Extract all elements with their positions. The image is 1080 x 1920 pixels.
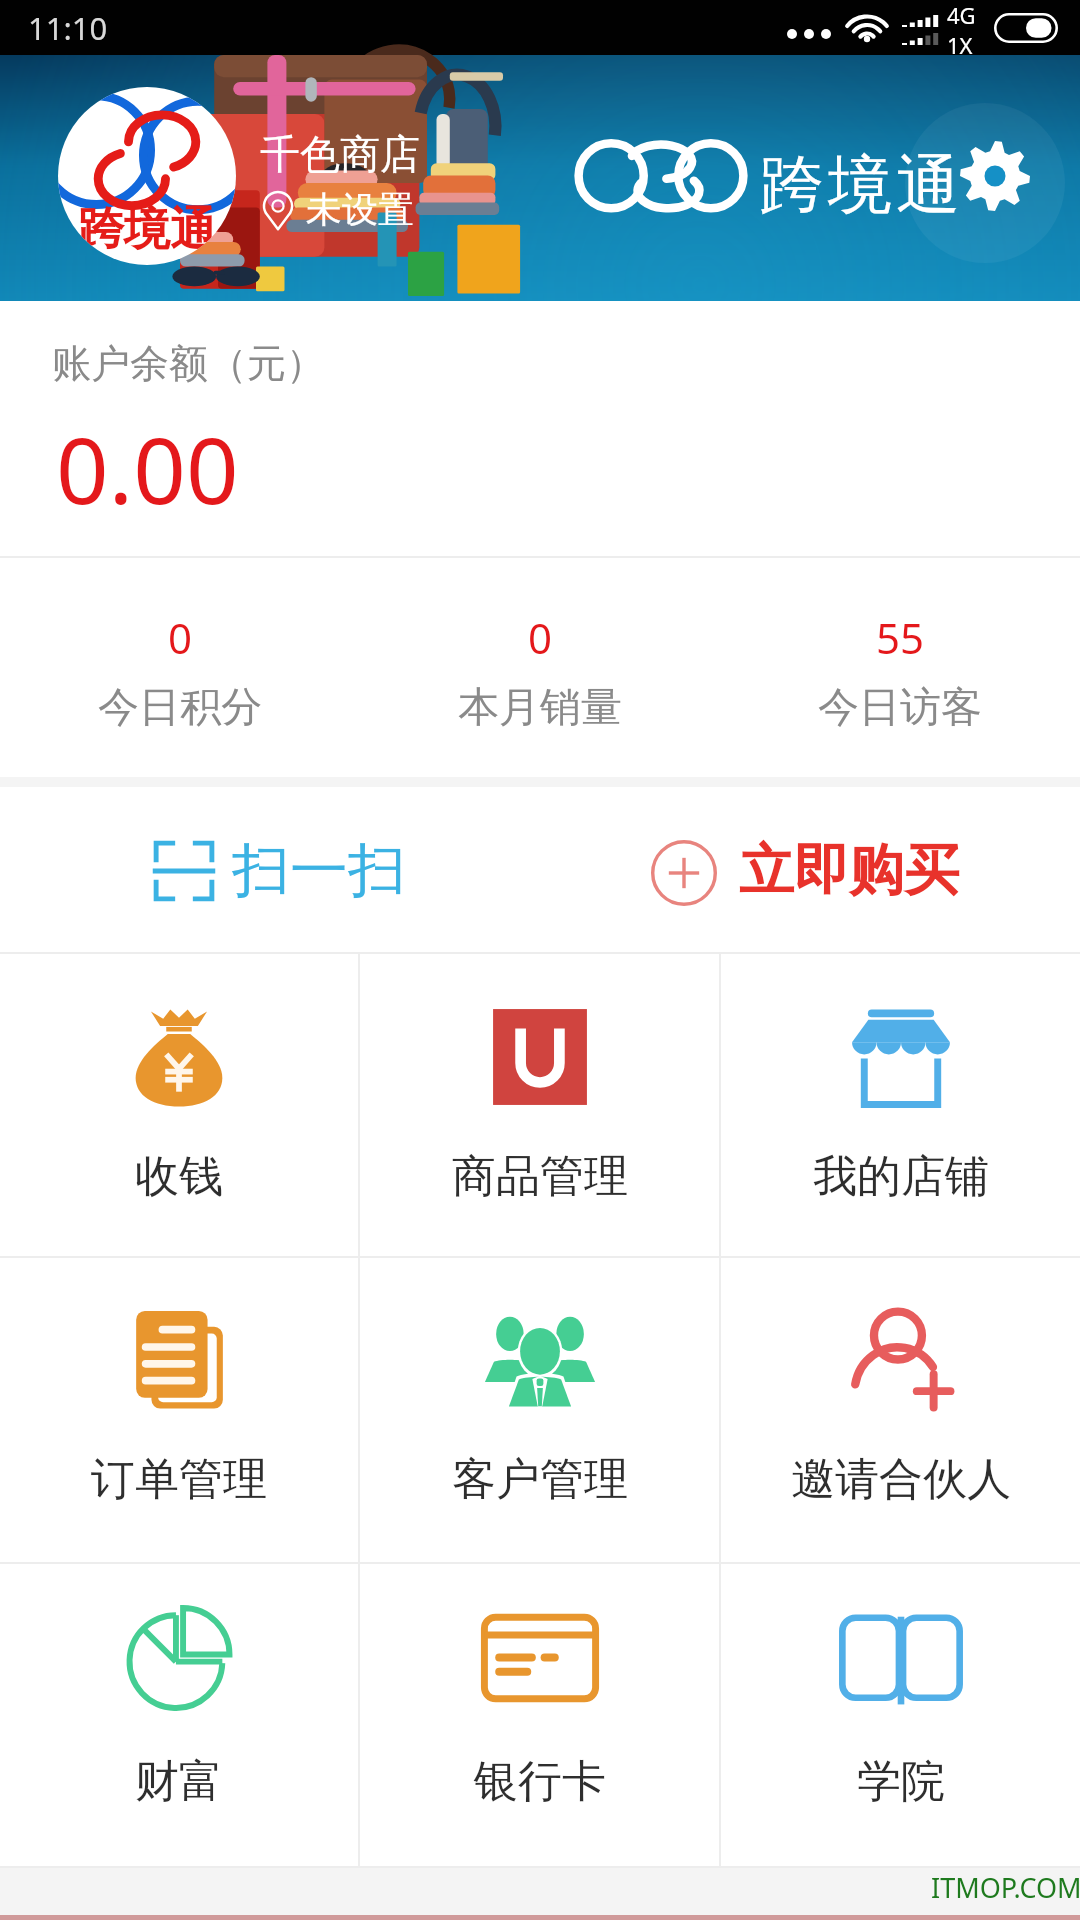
staticText: 商品管理 (452, 1149, 628, 1204)
button[interactable]: 财富 (0, 1564, 358, 1866)
button[interactable]: 千色商店 (254, 121, 484, 241)
button[interactable]: 扫一扫 (0, 787, 540, 954)
staticText: ITMOP.COM (931, 1869, 1080, 1906)
staticText: 跨境通 (78, 201, 216, 259)
staticText: 1X (947, 30, 973, 55)
button[interactable]: 收钱 (0, 954, 358, 1256)
staticText: 学院 (857, 1754, 945, 1809)
button[interactable]: 邀请合伙人 (721, 1258, 1080, 1562)
button[interactable]: 商品管理 (360, 954, 719, 1256)
staticText: 立即购买 (739, 836, 959, 905)
staticText: 0 (528, 609, 553, 666)
button[interactable]: 设置 (956, 137, 1034, 215)
staticText: 收钱 (135, 1149, 223, 1204)
button[interactable]: 0 (360, 558, 720, 777)
staticText: 55 (876, 609, 925, 666)
staticText: 千色商店 (260, 129, 420, 179)
staticText: 跨境通 (758, 145, 962, 226)
button[interactable]: 我的店铺 (721, 954, 1080, 1256)
staticText: 今日访客 (818, 682, 982, 734)
staticText: 未设置 (306, 187, 414, 232)
button[interactable]: 学院 (721, 1564, 1080, 1866)
button[interactable]: 0 (0, 558, 360, 777)
staticText: 订单管理 (91, 1452, 267, 1507)
button[interactable]: 55 (720, 558, 1080, 777)
staticText: 账户余额（元） (52, 339, 325, 388)
staticText: 客户管理 (452, 1452, 628, 1507)
button[interactable]: 立即购买 (540, 787, 1080, 954)
button[interactable]: 客户管理 (360, 1258, 719, 1562)
button[interactable]: 订单管理 (0, 1258, 358, 1562)
staticText: 4G (947, 0, 976, 30)
button[interactable]: 银行卡 (360, 1564, 719, 1866)
staticText: 财富 (135, 1754, 223, 1809)
staticText: 0.00 (56, 406, 239, 531)
staticText: 扫一扫 (232, 834, 406, 907)
staticText: 银行卡 (474, 1754, 606, 1809)
button[interactable]: 店铺头像 (58, 87, 236, 265)
staticText: 邀请合伙人 (791, 1452, 1011, 1507)
staticText: 11:10 (28, 7, 108, 49)
staticText: 今日积分 (98, 682, 262, 734)
staticText: 我的店铺 (813, 1149, 989, 1204)
staticText: 0 (168, 609, 193, 666)
staticText: 本月销量 (458, 682, 622, 734)
